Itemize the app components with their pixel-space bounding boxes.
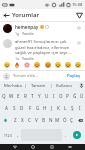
button[interactable]: Ğ <box>71 90 78 102</box>
button[interactable]: T <box>29 90 36 102</box>
button[interactable]: Backspace <box>75 114 85 126</box>
button[interactable]: ?123 <box>1 127 14 143</box>
button[interactable]: Like <box>75 39 82 46</box>
button[interactable]: N <box>47 114 54 126</box>
button[interactable]: Tamam <box>26 81 51 90</box>
button[interactable]: Send <box>73 9 85 21</box>
button[interactable]: I <box>50 90 57 102</box>
staticText: ahmet91 Sonuçlarınızı çok güzel hazırlad… <box>15 39 73 55</box>
button[interactable]: I <box>76 102 83 114</box>
staticText: Ğ <box>73 93 77 99</box>
button[interactable]: R <box>22 90 29 102</box>
button[interactable]: K <box>55 102 62 114</box>
staticText: Paylaş <box>67 73 81 79</box>
button[interactable]: Emoji 6 <box>64 61 72 69</box>
button[interactable]: V <box>33 114 40 126</box>
button[interactable]: Yanıtla <box>22 31 34 36</box>
staticText: Yorum ekle… <box>13 73 39 79</box>
button[interactable]: X <box>19 114 26 126</box>
button[interactable]: W <box>8 90 15 102</box>
button[interactable]: Yorum ekle… <box>13 73 64 79</box>
staticText: V <box>35 117 38 123</box>
staticText: C <box>28 117 31 123</box>
staticText: O <box>59 93 63 99</box>
staticText: J <box>51 105 53 111</box>
button[interactable]: Emoji 2 <box>23 61 31 69</box>
button[interactable]: A <box>2 102 10 114</box>
staticText: Y <box>38 93 41 99</box>
button[interactable]: Voice input <box>77 81 85 90</box>
button[interactable]: J <box>48 102 55 114</box>
button[interactable]: D <box>18 102 26 114</box>
button[interactable]: M <box>54 114 61 126</box>
staticText: E <box>17 93 20 99</box>
button[interactable]: Keyboard <box>66 144 74 150</box>
staticText: , <box>17 132 19 138</box>
button[interactable]: ahmet91 Sonuçlarınızı çok güzel hazırlad… <box>0 39 85 60</box>
staticText: L <box>64 105 67 111</box>
staticText: Merhaba <box>4 83 22 89</box>
button[interactable]: Yanıtla <box>22 56 34 60</box>
button[interactable]: L <box>62 102 69 114</box>
staticText: . <box>65 132 67 138</box>
staticText: B <box>42 117 45 123</box>
button[interactable]: Emoji 1 <box>13 61 21 69</box>
button[interactable]: Q <box>0 90 8 102</box>
button[interactable]: S <box>10 102 18 114</box>
button[interactable]: Ü <box>78 90 85 102</box>
button[interactable]: Like <box>75 24 82 31</box>
button[interactable]: . <box>62 127 69 143</box>
staticText: P <box>66 93 69 99</box>
button[interactable]: P <box>64 90 71 102</box>
staticText: Kullanıcı <box>56 83 73 89</box>
staticText: 1g <box>15 31 20 36</box>
button[interactable]: Z <box>11 114 19 126</box>
button[interactable]: H <box>41 102 48 114</box>
button[interactable]: Paylaş <box>66 73 82 79</box>
staticText: G <box>36 105 40 111</box>
staticText: I <box>79 105 81 111</box>
staticText: F <box>29 105 32 111</box>
button[interactable]: Emoji 0 <box>3 61 11 69</box>
button[interactable]: Y <box>36 90 43 102</box>
button[interactable]: Shift <box>0 114 11 126</box>
staticText: N <box>49 117 53 123</box>
button[interactable]: Emoji 5 <box>54 61 62 69</box>
staticText: Ş <box>71 105 74 111</box>
button[interactable]: Ş <box>69 102 76 114</box>
button[interactable]: Recents <box>48 144 56 150</box>
button[interactable]: hemenpay <box>0 24 85 36</box>
button[interactable]: Back <box>0 9 12 21</box>
button[interactable]: Emoji 4 <box>44 61 52 69</box>
button[interactable]: Ç <box>68 114 75 126</box>
button[interactable]: E <box>15 90 22 102</box>
button[interactable]: Home <box>29 144 37 150</box>
button[interactable]: Ö <box>61 114 68 126</box>
button[interactable]: Emoji 3 <box>33 61 41 69</box>
staticText: Z <box>14 117 17 123</box>
button[interactable]: Merhaba <box>0 81 25 90</box>
button[interactable]: B <box>40 114 47 126</box>
staticText: 15:08 <box>72 2 83 7</box>
button[interactable]: Back <box>11 144 19 150</box>
staticText: R <box>24 93 27 99</box>
button[interactable]: Kullanıcı <box>52 81 77 90</box>
staticText: Ö <box>63 117 67 123</box>
staticText: U <box>45 93 49 99</box>
button[interactable]: Send message <box>69 127 84 143</box>
button[interactable]: O <box>57 90 64 102</box>
staticText: A <box>5 105 8 111</box>
staticText: Q <box>2 93 6 99</box>
button[interactable]: , <box>14 127 21 143</box>
button[interactable]: C <box>26 114 33 126</box>
staticText: Yorumlar <box>12 11 40 19</box>
staticText: hemenpay <box>15 24 39 30</box>
button[interactable]: F <box>26 102 34 114</box>
button[interactable]: U <box>43 90 50 102</box>
staticText: Tamam <box>31 83 46 89</box>
staticText: ?123 <box>4 133 12 138</box>
staticText: S <box>13 105 16 111</box>
button[interactable]: G <box>34 102 41 114</box>
button[interactable]: Emoji 7 <box>74 61 82 69</box>
